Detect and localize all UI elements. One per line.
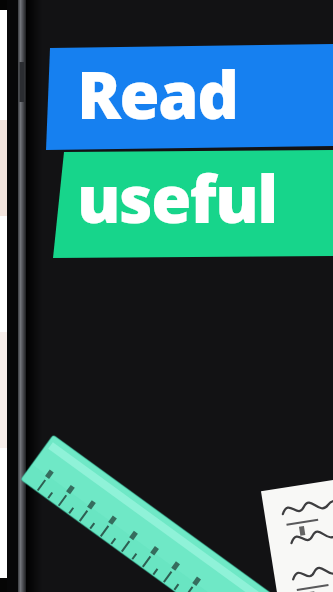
button[interactable]: Read useful — promo screen — [0, 0, 333, 592]
